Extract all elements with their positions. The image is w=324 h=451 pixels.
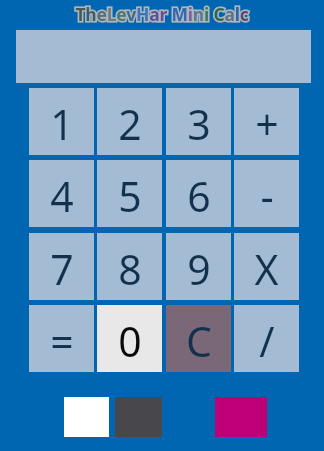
staticText: X	[254, 241, 279, 297]
button[interactable]: X	[234, 233, 299, 300]
button[interactable]: +	[234, 88, 299, 155]
staticText: C	[186, 313, 212, 369]
button[interactable]: =	[29, 305, 94, 372]
staticText: TheLevHar Mini Calc	[75, 2, 249, 26]
button[interactable]: 3	[166, 88, 231, 155]
button[interactable]: 0	[97, 305, 162, 372]
button[interactable]: 5	[97, 160, 162, 227]
staticText: -	[260, 168, 274, 224]
staticText: TheLevHar Mini Calc	[75, 2, 249, 26]
button[interactable]: 6	[166, 160, 231, 227]
staticText: 2	[118, 96, 142, 152]
staticText: 3	[187, 96, 211, 152]
button[interactable]: 8	[97, 233, 162, 300]
staticText: 5	[118, 168, 142, 224]
staticText: 9	[187, 241, 211, 297]
staticText: 6	[187, 168, 211, 224]
button[interactable]: /	[234, 305, 299, 372]
staticText: 8	[118, 241, 142, 297]
button[interactable]: C	[166, 305, 231, 372]
button[interactable]: 7	[29, 233, 94, 300]
button[interactable]: 9	[166, 233, 231, 300]
button[interactable]: 1	[29, 88, 94, 155]
staticText: 1	[50, 96, 74, 152]
staticText: 4	[50, 168, 74, 224]
button[interactable]: 2	[97, 88, 162, 155]
button[interactable]: -	[234, 160, 299, 227]
staticText: +	[255, 96, 279, 152]
staticText: 0	[118, 313, 142, 369]
staticText: =	[50, 313, 74, 369]
button[interactable]: 4	[29, 160, 94, 227]
staticText: 7	[50, 241, 74, 297]
staticText: /	[259, 313, 275, 369]
